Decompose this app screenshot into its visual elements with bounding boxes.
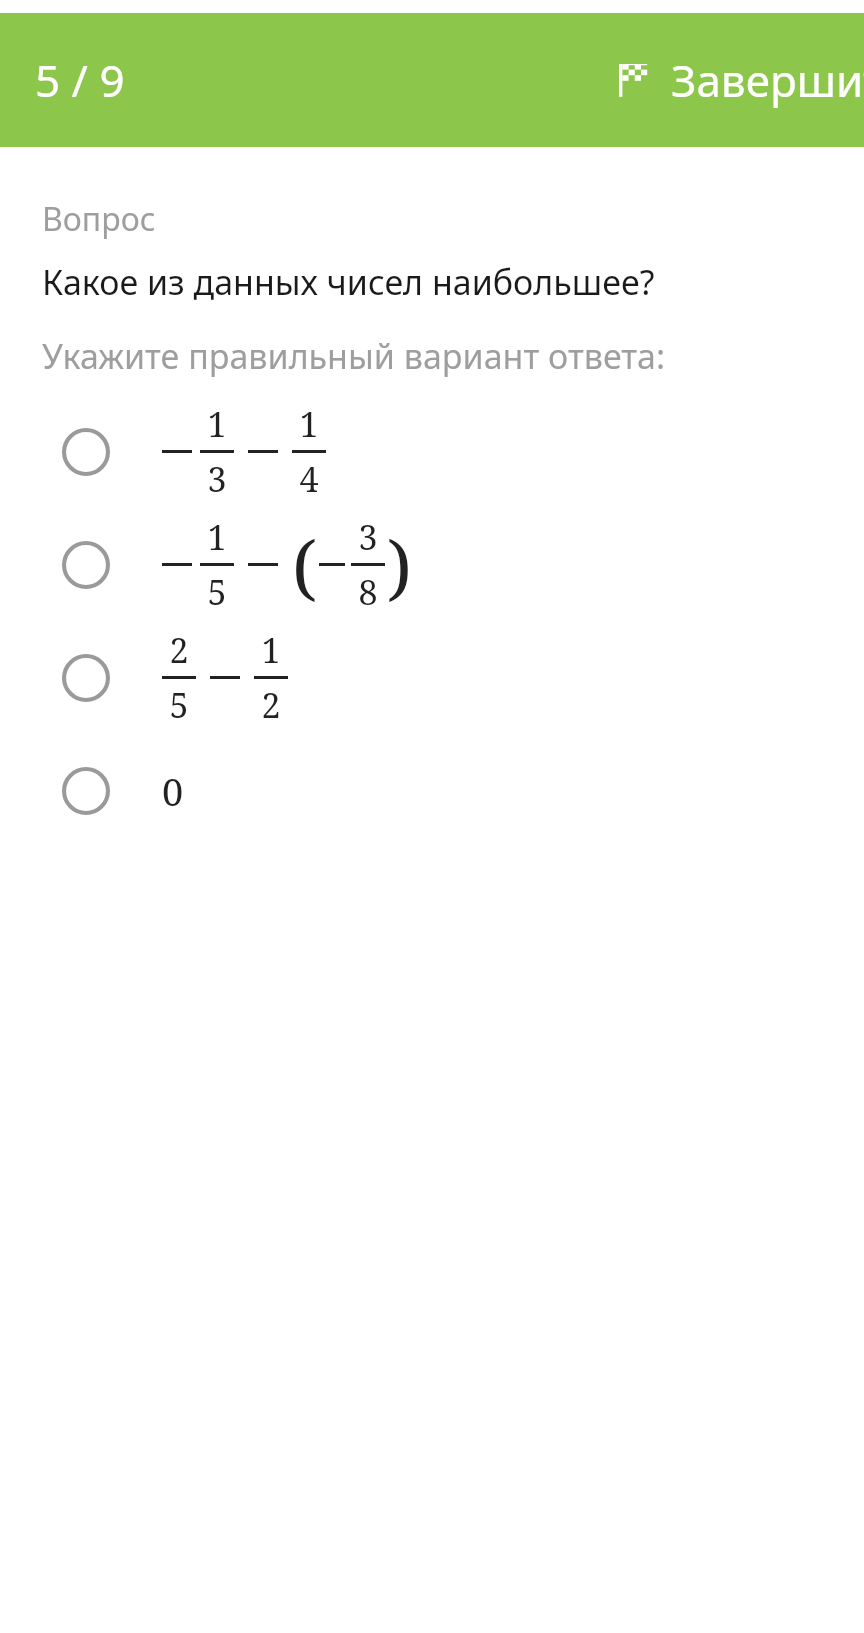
button[interactable]: 0 [0,734,864,847]
staticText: 1 [207,514,227,560]
staticText: ) [387,516,412,614]
staticText: ( [292,516,317,614]
staticText: 4 [299,456,319,502]
staticText: 1 [299,401,319,447]
button[interactable]: 2 [0,621,864,734]
staticText: 1 [207,401,227,447]
staticText: Вопрос [42,197,156,241]
staticText: 8 [358,569,378,615]
button[interactable]: Завершить [607,42,864,118]
staticText: 2 [261,682,281,728]
staticText: Укажите правильный вариант ответа: [42,333,666,379]
staticText: 0 [162,765,184,817]
staticText: 3 [358,514,378,560]
staticText: 1 [261,627,281,673]
staticText: 3 [207,456,227,502]
staticText: Завершить [671,50,864,110]
button[interactable]: 1 [0,395,864,508]
staticText: Какое из данных чисел наибольшее? [42,259,655,305]
staticText: 2 [169,627,189,673]
staticText: 5 [207,569,227,615]
staticText: 5 [169,682,189,728]
button[interactable]: 1 [0,508,864,621]
staticText: 5 / 9 [35,50,125,110]
